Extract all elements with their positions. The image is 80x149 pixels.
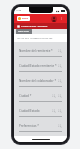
- button[interactable]: Pick Ciudad * option: [51, 93, 56, 98]
- button[interactable]: Ciudad *: [17, 87, 64, 102]
- button[interactable]: Preferencias *: [17, 117, 64, 132]
- staticText: Ciudad *: [19, 94, 51, 98]
- button[interactable]: UIT: Ver de 0 NUMBER/ANTONIO TRE: [14, 34, 67, 42]
- button[interactable]: Profile: [51, 16, 57, 22]
- button[interactable]: Open Ciudad/Estado remitente * picker: [57, 63, 62, 68]
- staticText: Ciudad/Estado remitente *: [19, 64, 57, 68]
- staticText: A nueva de guía / identidad: [21, 25, 48, 28]
- button[interactable]: Ciudad/Estado potencial *: [17, 102, 64, 117]
- staticText: Preferencias *: [19, 124, 57, 128]
- staticText: Nombre del remitente *: [19, 49, 57, 53]
- staticText: Datos Envío: [18, 30, 30, 33]
- staticText: Nombre del colaborador *: [19, 79, 57, 83]
- staticText: UIT: Ver de 0 NUMBER/ANTONIO TRE: [17, 37, 53, 40]
- button[interactable]: Ciudad/Estado remitente *: [17, 57, 64, 72]
- button[interactable]: Open Nombre del colaborador * picker: [57, 78, 62, 83]
- button[interactable]: More options: [59, 16, 64, 21]
- button[interactable]: Nombre del colaborador *: [17, 72, 64, 87]
- staticText: ◼◼: [56, 10, 60, 12]
- button[interactable]: Datos Envío: [16, 29, 32, 34]
- staticText: 11:08: [16, 9, 22, 12]
- staticText: Ciudad/Estado potencial *: [19, 109, 51, 113]
- button[interactable]: Open Ciudad * picker: [57, 93, 62, 98]
- button[interactable]: Open Preferencias * picker: [57, 123, 62, 128]
- staticText: DEMO: [22, 17, 29, 20]
- button[interactable]: Open Ciudad/Estado potencial * picker: [57, 108, 62, 113]
- button[interactable]: Open Nombre del remitente * picker: [57, 48, 62, 53]
- button[interactable]: Nombre del remitente *: [17, 44, 64, 57]
- button[interactable]: Pick Ciudad/Estado potencial * option: [51, 108, 56, 113]
- button[interactable]: A nueva de guía / identidad: [14, 23, 67, 29]
- button[interactable]: DEMO: [17, 16, 30, 21]
